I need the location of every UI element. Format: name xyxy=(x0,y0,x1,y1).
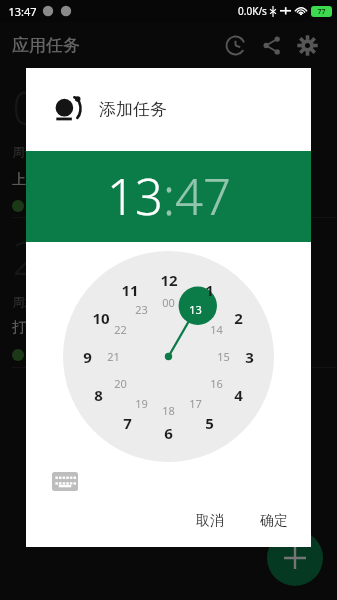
staticText: 取消 xyxy=(196,512,224,530)
button[interactable]: 4 xyxy=(234,385,243,405)
button[interactable]: 7 xyxy=(123,413,132,433)
staticText: 13 xyxy=(107,163,163,230)
staticText: 16 xyxy=(210,376,223,391)
staticText: 11 xyxy=(121,280,139,300)
staticText: 15 xyxy=(217,349,230,364)
button[interactable]: 确定 xyxy=(249,505,299,537)
staticText: 19 xyxy=(135,396,148,411)
staticText: 确定 xyxy=(260,512,288,530)
button[interactable]: 10 xyxy=(92,308,110,328)
button[interactable]: 13 xyxy=(107,163,163,230)
button[interactable]: 17 xyxy=(189,396,202,411)
button[interactable]: 23 xyxy=(135,302,148,317)
staticText: 10 xyxy=(92,308,110,328)
staticText: 6 xyxy=(164,423,173,443)
staticText: 4 xyxy=(234,385,243,405)
button[interactable]: 6 xyxy=(164,423,173,443)
button[interactable]: 11 xyxy=(121,280,139,300)
staticText: 0.0K/s xyxy=(238,4,267,18)
staticText: 3 xyxy=(245,347,254,367)
button[interactable]: Share xyxy=(253,27,289,63)
button[interactable]: 14 xyxy=(210,322,223,337)
staticText: 00 xyxy=(162,295,175,310)
staticText: 12 xyxy=(160,270,178,290)
staticText: : xyxy=(163,163,175,230)
button[interactable]: 12 xyxy=(160,270,178,290)
button[interactable]: 18 xyxy=(162,403,175,418)
staticText: 添加任务 xyxy=(99,99,167,120)
staticText: 47 xyxy=(175,163,231,230)
staticText: 21 xyxy=(107,349,120,364)
staticText: 18 xyxy=(162,403,175,418)
button[interactable]: 19 xyxy=(135,396,148,411)
staticText: 14 xyxy=(210,322,223,337)
button[interactable]: 取消 xyxy=(185,505,235,537)
staticText: 应用任务 xyxy=(12,35,80,56)
button[interactable]: Add task xyxy=(267,530,323,586)
button[interactable]: 2 xyxy=(234,308,243,328)
staticText: 20 xyxy=(114,376,127,391)
button[interactable]: 9 xyxy=(83,347,92,367)
button[interactable]: Switch to keyboard input xyxy=(52,472,78,491)
button[interactable]: 16 xyxy=(210,376,223,391)
staticText: 周六 周日 xyxy=(12,293,64,309)
button[interactable]: 22 xyxy=(114,322,127,337)
button[interactable]: 21 xyxy=(107,349,120,364)
button[interactable]: 5 xyxy=(205,413,214,433)
button[interactable]: 15 xyxy=(217,349,230,364)
staticText: 5 xyxy=(205,413,214,433)
staticText: 8 xyxy=(94,385,103,405)
staticText: 7 xyxy=(123,413,132,433)
staticText: 9 xyxy=(83,347,92,367)
staticText: 13:47 xyxy=(8,4,37,19)
staticText: 1 xyxy=(205,280,214,300)
staticText: 22 xyxy=(114,322,127,337)
staticText: 0 xyxy=(12,76,39,139)
button[interactable]: 1 xyxy=(205,280,214,300)
staticText: 13 xyxy=(189,302,202,317)
button[interactable]: 20 xyxy=(114,376,127,391)
button[interactable]: 8 xyxy=(94,385,103,405)
button[interactable]: 13 xyxy=(189,302,202,317)
button[interactable]: History xyxy=(217,27,253,63)
button[interactable]: 0 xyxy=(0,68,337,218)
button[interactable]: 00 xyxy=(162,295,175,310)
staticText: 打卡提醒 xyxy=(12,319,68,337)
staticText: 77 xyxy=(317,7,326,17)
button[interactable]: 2 xyxy=(0,218,337,368)
staticText: 23 xyxy=(135,302,148,317)
button[interactable]: 3 xyxy=(245,347,254,367)
button[interactable]: Settings xyxy=(289,27,325,63)
staticText: 周一 至 周五 xyxy=(12,143,79,159)
staticText: 2 xyxy=(12,226,39,289)
staticText: 17 xyxy=(189,396,202,411)
staticText: 2 xyxy=(234,308,243,328)
button[interactable]: 47 xyxy=(175,163,231,230)
staticText: 上午 9:00 xyxy=(12,169,72,188)
